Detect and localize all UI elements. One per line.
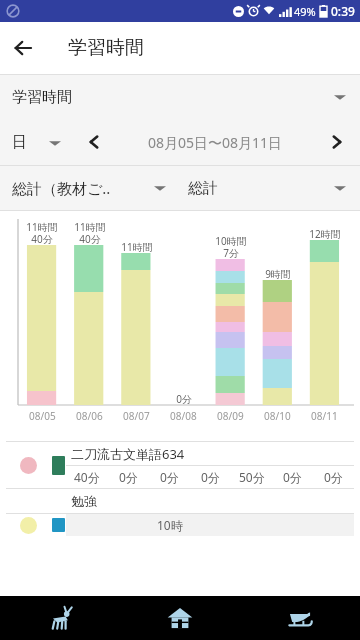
button[interactable]: Sleigh — [240, 596, 360, 640]
staticText: 0分 — [160, 469, 179, 485]
staticText: 08/07 — [123, 409, 150, 423]
staticText: 11時間 40分 — [74, 220, 106, 246]
staticText: 08/11 — [311, 409, 338, 423]
staticText: 08/09 — [217, 409, 244, 423]
staticText: 総計 — [188, 179, 218, 198]
staticText: 08/08 — [170, 409, 197, 423]
staticText: 学習時間 — [12, 88, 72, 107]
button[interactable]: Previous — [79, 127, 109, 157]
staticText: 11時間 — [121, 240, 153, 254]
staticText: 12時間 — [309, 227, 341, 241]
staticText: 日 — [12, 133, 27, 152]
staticText: 総計（教材ご.. — [12, 178, 111, 198]
button[interactable]: 10時 — [6, 514, 354, 536]
staticText: 40分 — [74, 469, 100, 485]
button[interactable]: 学習時間 — [0, 75, 360, 119]
staticText: 10時間 7分 — [215, 234, 247, 260]
staticText: 0分 — [119, 469, 138, 485]
staticText: 勉強 — [71, 493, 97, 509]
button[interactable]: Home — [120, 596, 240, 640]
staticText: 08月05日〜08月11日 — [148, 133, 283, 152]
staticText: 0分 — [283, 469, 302, 485]
button[interactable]: Reindeer — [0, 596, 120, 640]
staticText: 二刀流古文単語634 — [71, 445, 185, 463]
staticText: 0分 — [176, 392, 192, 406]
button[interactable]: 二刀流古文単語634 — [6, 442, 354, 488]
staticText: 50分 — [239, 469, 265, 485]
staticText: 08/05 — [29, 409, 56, 423]
button[interactable]: Back — [0, 24, 48, 72]
staticText: 11時間 40分 — [26, 220, 58, 246]
staticText: 08/06 — [76, 409, 103, 423]
button[interactable]: Next — [322, 127, 352, 157]
staticText: 0分 — [201, 469, 220, 485]
button[interactable]: 総計 — [180, 166, 360, 210]
staticText: 9時間 — [265, 267, 291, 281]
staticText: 0:39 — [331, 3, 355, 19]
button[interactable]: 勉強 — [6, 489, 354, 513]
button[interactable]: 日 — [12, 133, 61, 152]
staticText: 0分 — [324, 469, 343, 485]
staticText: 学習時間 — [68, 36, 144, 60]
staticText: 10時 — [157, 517, 183, 533]
staticText: 08/10 — [264, 409, 291, 423]
button[interactable]: 総計（教材ご.. — [0, 166, 180, 210]
staticText: 49% — [294, 4, 316, 19]
